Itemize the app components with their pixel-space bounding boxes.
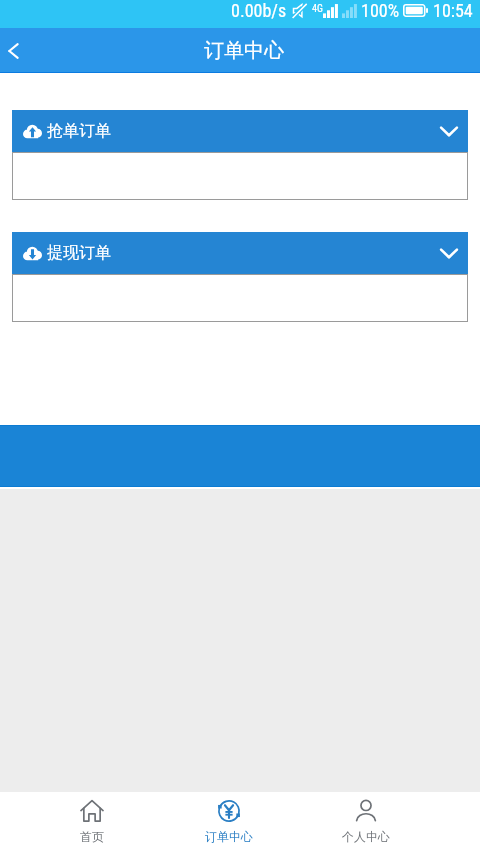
staticText: 4G (312, 3, 323, 15)
button[interactable]: 个人中心 (297, 792, 434, 853)
staticText: 100% (361, 0, 400, 21)
button[interactable]: 订单中心 (160, 792, 297, 853)
staticText: 订单中心 (205, 829, 253, 844)
staticText: 0.00b/s (231, 0, 287, 21)
staticText: 10:54 (433, 0, 473, 21)
staticText: 抢单订单 (47, 121, 111, 141)
button[interactable]: Back (0, 28, 40, 73)
button[interactable]: 提现订单 (12, 232, 468, 274)
button[interactable]: 抢单订单 (12, 110, 468, 152)
staticText: 提现订单 (47, 243, 111, 263)
staticText: 个人中心 (342, 829, 390, 844)
button[interactable]: 首页 (23, 792, 160, 853)
staticText: 首页 (80, 829, 104, 844)
staticText: 订单中心 (204, 38, 284, 63)
